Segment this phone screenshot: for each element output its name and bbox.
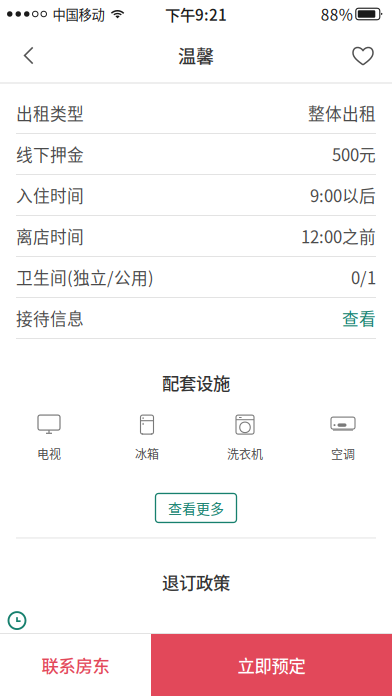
staticText: 查看 bbox=[342, 306, 376, 330]
staticText: 线下押金 bbox=[16, 142, 84, 166]
staticText: 离店时间 bbox=[16, 224, 84, 248]
staticText: 查看更多 bbox=[168, 498, 224, 518]
staticText: 12:00之前 bbox=[301, 224, 376, 248]
staticText: 接待信息 bbox=[16, 306, 84, 330]
staticText: 空调 bbox=[331, 445, 355, 462]
button[interactable]: 卫生间(独立/公用) bbox=[0, 257, 392, 298]
staticText: 中国移动 bbox=[52, 4, 104, 24]
staticText: 温馨 bbox=[178, 42, 214, 69]
staticText: 入住时间 bbox=[16, 183, 84, 207]
button[interactable]: 离店时间 bbox=[0, 216, 392, 257]
button[interactable]: 查看更多 bbox=[155, 493, 236, 522]
staticText: 退订政策 bbox=[162, 569, 230, 595]
staticText: 0/1 bbox=[351, 265, 376, 289]
button[interactable]: 立即预定 bbox=[151, 634, 392, 696]
button[interactable]: 洗衣机 bbox=[196, 414, 294, 462]
staticText: 9:00以后 bbox=[310, 183, 376, 207]
staticText: 500元 bbox=[332, 142, 376, 166]
button[interactable]: 线下押金 bbox=[0, 134, 392, 175]
staticText: 出租类型 bbox=[16, 101, 84, 125]
button[interactable]: 入住时间 bbox=[0, 175, 392, 216]
staticText: 下午9:21 bbox=[165, 3, 227, 25]
button[interactable]: 电视 bbox=[0, 414, 98, 462]
staticText: 洗衣机 bbox=[227, 445, 263, 462]
button[interactable]: Back bbox=[4, 28, 53, 83]
staticText: 配套设施 bbox=[162, 370, 230, 395]
button[interactable]: 冰箱 bbox=[98, 414, 196, 462]
staticText: 冰箱 bbox=[135, 445, 159, 462]
staticText: 电视 bbox=[37, 445, 61, 462]
button[interactable]: Favorite bbox=[338, 28, 388, 83]
staticText: 整体出租 bbox=[308, 101, 376, 125]
staticText: 卫生间(独立/公用) bbox=[16, 265, 154, 289]
staticText: 联系房东 bbox=[41, 652, 109, 678]
button[interactable]: 联系房东 bbox=[0, 634, 151, 696]
button[interactable]: 出租类型 bbox=[0, 93, 392, 134]
staticText: 88% bbox=[321, 3, 353, 25]
button[interactable]: 空调 bbox=[294, 414, 392, 462]
button[interactable]: 接待信息 bbox=[0, 298, 392, 339]
staticText: 立即预定 bbox=[237, 652, 305, 678]
